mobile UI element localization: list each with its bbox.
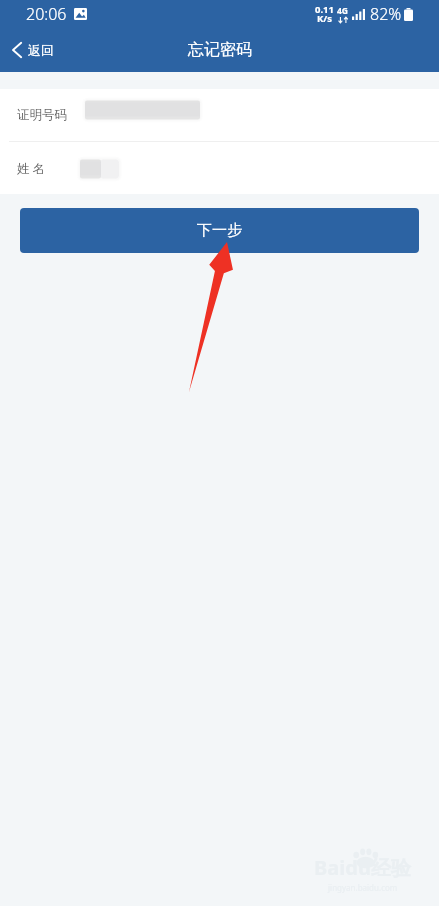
staticText: 20:06 [26, 3, 67, 25]
button[interactable]: 下一步 [20, 208, 419, 253]
staticText: 忘记密码 [188, 40, 252, 60]
staticText: 0.11 K/s [315, 3, 334, 25]
staticText: 返回 [28, 42, 54, 58]
staticText: 下一步 [197, 221, 242, 240]
staticText: jingyan.baidu.com [328, 882, 398, 893]
button[interactable]: 姓 名 [0, 142, 439, 194]
staticText: Baidu经验 [314, 854, 411, 881]
staticText: 4G [337, 5, 349, 17]
button[interactable]: 证明号码 [0, 89, 439, 141]
staticText: 82% [370, 3, 402, 25]
staticText: 证明号码 [17, 107, 67, 123]
staticText: 姓 名 [17, 160, 46, 177]
button[interactable]: 返回 [0, 34, 68, 66]
